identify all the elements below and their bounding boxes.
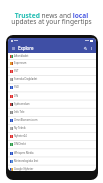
staticText: Ny Teknik	[14, 126, 26, 130]
button[interactable]: Aftonbladet	[8, 53, 96, 59]
button[interactable]: Expressen	[8, 59, 96, 67]
button[interactable]: Sydsvenskan	[8, 100, 96, 108]
button[interactable]: SVT	[8, 67, 96, 75]
button[interactable]: DN Direkt	[8, 140, 96, 148]
staticText: Nyheter24	[14, 134, 27, 138]
staticText: Explore	[18, 45, 34, 51]
staticText: Aftonbladet	[14, 54, 29, 58]
button[interactable]: Google Nyheter	[8, 165, 96, 171]
staticText: Sydsvenskan	[14, 102, 30, 106]
button[interactable]: Meteorologiska Inst	[8, 157, 96, 165]
button[interactable]: OmniEkonomi.com	[8, 116, 96, 124]
button[interactable]: Whispers Media	[8, 149, 96, 157]
staticText: Svenska Dagbladet	[14, 77, 38, 81]
button[interactable]: Nyheter24	[8, 132, 96, 140]
button[interactable]: Info Tele	[8, 108, 96, 116]
staticText: DN	[14, 94, 18, 98]
staticText: DN Direkt	[14, 142, 26, 146]
button[interactable]: Search	[83, 46, 88, 51]
staticText: Meteorologiska Inst	[14, 159, 39, 163]
staticText: OmniEkonomi.com	[14, 118, 38, 122]
button[interactable]: SVD	[8, 83, 96, 91]
button[interactable]: Menu	[11, 46, 16, 51]
staticText: Google Nyheter	[14, 167, 34, 171]
staticText: Info Tele	[14, 110, 25, 114]
button[interactable]: DN	[8, 92, 96, 100]
staticText: SVD	[14, 85, 19, 89]
staticText: SVT	[14, 69, 19, 73]
button[interactable]: More options	[89, 46, 94, 51]
staticText: Expressen	[14, 61, 27, 65]
staticText: Whispers Media	[14, 151, 34, 155]
button[interactable]: Ny Teknik	[8, 124, 96, 132]
staticText: Trusted news and local updates at your f…	[11, 11, 92, 26]
button[interactable]: Svenska Dagbladet	[8, 75, 96, 83]
